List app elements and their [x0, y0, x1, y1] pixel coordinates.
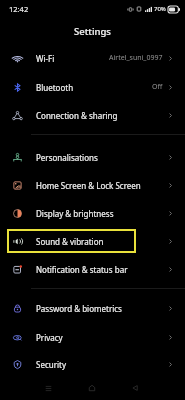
- staticText: Bluetooth: [36, 82, 74, 93]
- staticText: 70%: [154, 5, 166, 13]
- staticText: Connection & sharing: [36, 110, 118, 121]
- staticText: Settings: [74, 25, 111, 38]
- button[interactable]: Home Screen & Lock Screen: [0, 171, 185, 199]
- button[interactable]: Privacy: [0, 323, 185, 351]
- button[interactable]: Bluetooth: [0, 73, 185, 101]
- staticText: 12:42: [9, 4, 29, 14]
- staticText: Personalisations: [36, 152, 98, 163]
- staticText: Display & brightness: [36, 208, 114, 219]
- button[interactable]: Personalisations: [0, 143, 185, 171]
- button[interactable]: Security: [0, 350, 185, 378]
- button[interactable]: Home: [82, 378, 102, 398]
- staticText: Wi-Fi: [36, 53, 55, 64]
- button[interactable]: Password & biometrics: [0, 294, 185, 322]
- button[interactable]: Sound & vibration: [0, 227, 185, 255]
- staticText: Off: [152, 82, 163, 92]
- staticText: Security: [36, 359, 67, 370]
- staticText: Privacy: [36, 332, 63, 343]
- staticText: Password & biometrics: [36, 303, 122, 314]
- staticText: Sound & vibration: [36, 236, 104, 247]
- button[interactable]: Recent apps: [38, 378, 58, 398]
- button[interactable]: Back: [125, 378, 145, 398]
- staticText: Airtel_suni_0997: [109, 53, 163, 63]
- button[interactable]: Connection & sharing: [0, 101, 185, 129]
- button[interactable]: Wi-Fi: [0, 44, 185, 72]
- button[interactable]: Notification & status bar: [0, 255, 185, 283]
- button[interactable]: Display & brightness: [0, 199, 185, 227]
- staticText: Notification & status bar: [36, 264, 128, 275]
- staticText: Home Screen & Lock Screen: [36, 180, 141, 191]
